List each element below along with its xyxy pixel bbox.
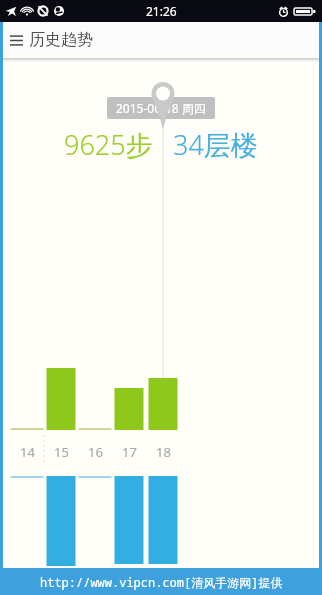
staticText: 16 xyxy=(88,443,103,461)
staticText: 历史趋势 xyxy=(29,30,93,50)
button[interactable]: 2015-06-18 周四 xyxy=(107,97,215,119)
staticText: 17 xyxy=(122,443,137,461)
button[interactable]: Menu xyxy=(3,22,29,58)
staticText: 21:26 xyxy=(146,3,177,19)
staticText: 15 xyxy=(54,443,69,461)
staticText: 18 xyxy=(156,443,171,461)
staticText: 9625步 xyxy=(64,126,153,163)
staticText: 34层楼 xyxy=(173,126,258,163)
staticText: 2015-06-18 周四 xyxy=(116,100,206,116)
staticText: 14 xyxy=(20,443,35,461)
staticText: http://www.vipcn.com[清风手游网]提供 xyxy=(40,574,283,590)
